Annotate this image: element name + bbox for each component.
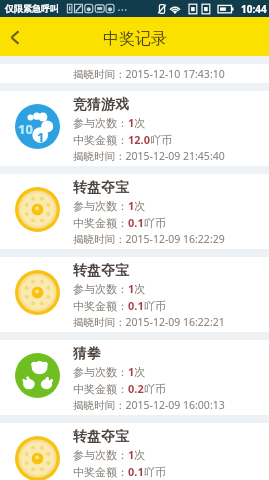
staticText: 中奖金额：0.1吖币 bbox=[73, 464, 166, 479]
staticText: 中奖金额：0.2吖币 bbox=[73, 381, 166, 396]
button[interactable]: 猜拳 bbox=[0, 340, 269, 415]
staticText: 中奖记录 bbox=[103, 29, 167, 49]
button[interactable]: Back bbox=[0, 17, 29, 56]
staticText: 1 bbox=[37, 128, 45, 146]
staticText: 10 bbox=[18, 120, 33, 138]
staticText: 中奖金额：12.0吖币 bbox=[73, 132, 172, 147]
staticText: 竞猜游戏 bbox=[73, 96, 129, 114]
staticText: 中奖金额：0.1吖币 bbox=[73, 215, 166, 230]
staticText: 参与次数：1次 bbox=[73, 198, 146, 213]
staticText: 揭晓时间：2015-12-09 16:00:13 bbox=[73, 398, 225, 412]
staticText: 揭晓时间：2015-12-09 16:22:29 bbox=[73, 232, 225, 246]
staticText: 参与次数：1次 bbox=[73, 115, 146, 130]
button[interactable]: 转盘夺宝 bbox=[0, 174, 269, 249]
staticText: 揭晓时间：2015-12-09 16:22:21 bbox=[73, 315, 225, 329]
staticText: 仅限紧急呼叫 bbox=[5, 3, 59, 14]
staticText: 揭晓时间：2015-12-10 17:43:10 bbox=[73, 67, 225, 81]
button[interactable]: 揭晓时间：2015-12-10 17:43:10 bbox=[0, 64, 269, 83]
staticText: 转盘夺宝 bbox=[73, 428, 129, 446]
staticText: 参与次数：1次 bbox=[73, 364, 146, 379]
staticText: 参与次数：1次 bbox=[73, 447, 146, 462]
staticText: 揭晓时间：2015-12-09 21:45:40 bbox=[73, 149, 225, 163]
button[interactable]: 转盘夺宝 bbox=[0, 257, 269, 332]
staticText: 猜拳 bbox=[73, 345, 101, 363]
staticText: 转盘夺宝 bbox=[73, 262, 129, 280]
staticText: 10:44 bbox=[241, 2, 267, 16]
button[interactable]: 10 bbox=[0, 91, 269, 166]
staticText: 参与次数：1次 bbox=[73, 281, 146, 296]
button[interactable]: 转盘夺宝 bbox=[0, 423, 269, 480]
staticText: 中奖金额：0.1吖币 bbox=[73, 298, 166, 313]
staticText: 转盘夺宝 bbox=[73, 179, 129, 197]
